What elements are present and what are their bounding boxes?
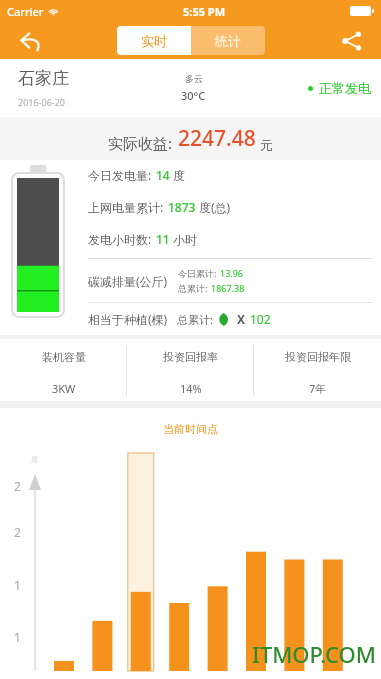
staticText: 今日累计: [178,267,217,279]
staticText: 度(总) [199,199,231,215]
staticText: 14% [180,381,202,396]
button[interactable]: Back [14,24,48,58]
button[interactable]: 统计 [191,26,265,55]
staticText: 今日发电量: [88,167,152,183]
staticText: 投资回报年限 [285,350,351,364]
staticText: 2247.48 [178,124,256,153]
staticText: 装机容量 [42,350,86,364]
button[interactable]: Share [335,24,369,58]
staticText: 30°C [181,88,206,103]
staticText: 3KW [52,381,76,396]
staticText: 1 [14,577,21,593]
staticText: 1 [14,629,21,645]
staticText: 14 [156,167,170,183]
button[interactable]: 当前时间点 [163,422,218,436]
staticText: 总累计: [178,282,208,294]
staticText: 上网电量累计: [88,199,164,215]
staticText: 11 [156,231,170,247]
staticText: 5:55 PM [183,4,226,19]
staticText: 当前时间点 [163,422,218,436]
staticText: 度 [31,455,38,464]
staticText: 碳减排量(公斤) [88,273,168,289]
staticText: 石家庄 [18,68,69,89]
staticText: 1867.38 [211,282,245,294]
button[interactable]: 实时 [117,26,191,55]
staticText: 正常发电 [319,80,371,96]
staticText: 102 [250,311,271,327]
staticText: 小时 [173,232,197,247]
staticText: Carrier [7,4,44,19]
staticText: 投资回报率 [163,350,218,364]
button[interactable]: 装机容量 [0,339,127,401]
staticText: 相当于种植(棵) [88,311,168,327]
staticText: 2 [14,478,21,494]
staticText: 实时 [141,33,167,49]
button[interactable]: 正常发电 [308,80,371,96]
staticText: 统计 [215,33,241,49]
staticText: 总累计: [177,312,213,327]
button[interactable]: 投资回报年限 [254,339,381,401]
staticText: X [237,311,246,327]
button[interactable]: 投资回报率 [127,339,254,401]
staticText: ITMOP.COM [252,639,377,669]
staticText: 发电小时数: [88,231,152,247]
staticText: 度 [173,168,185,183]
staticText: 实际收益: [108,133,173,153]
staticText: 多云 [185,73,203,84]
staticText: 7年 [309,381,327,396]
staticText: 13.96 [220,267,244,279]
staticText: 元 [260,137,273,153]
staticText: 2 [14,524,21,540]
staticText: 1873 [168,199,196,215]
staticText: 2016-06-20 [18,96,65,108]
